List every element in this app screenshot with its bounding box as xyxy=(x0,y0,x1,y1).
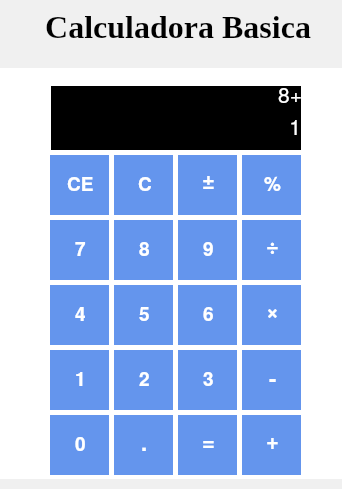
staticText: 5 xyxy=(139,300,150,327)
staticText: 1 xyxy=(75,365,86,392)
button[interactable]: Plus xyxy=(242,415,301,475)
button[interactable]: Five xyxy=(114,285,173,345)
button[interactable]: Zero xyxy=(50,415,109,475)
button[interactable]: Two xyxy=(114,350,173,410)
button[interactable]: Divide xyxy=(242,220,301,280)
staticText: % xyxy=(264,170,281,197)
staticText: = xyxy=(202,425,215,457)
staticText: CE xyxy=(67,170,94,197)
staticText: - xyxy=(269,362,277,394)
staticText: 2 xyxy=(139,365,150,392)
button[interactable]: Clear xyxy=(114,155,173,215)
button[interactable]: Three xyxy=(178,350,237,410)
button[interactable]: Four xyxy=(50,285,109,345)
staticText: 7 xyxy=(75,235,86,262)
staticText: 3 xyxy=(203,365,214,392)
button[interactable]: Clear entry xyxy=(50,155,109,215)
staticText: Calculadora Basica xyxy=(45,9,311,44)
staticText: 8 xyxy=(139,235,150,262)
button[interactable]: One xyxy=(50,350,109,410)
button[interactable]: Plus minus xyxy=(178,155,237,215)
button[interactable]: Percent xyxy=(242,155,301,215)
staticText: ± xyxy=(202,164,215,196)
staticText: 1 xyxy=(52,111,301,141)
staticText: × xyxy=(266,294,279,326)
button[interactable]: Seven xyxy=(50,220,109,280)
staticText: 4 xyxy=(75,300,86,327)
button[interactable]: Equals xyxy=(178,415,237,475)
staticText: + xyxy=(266,424,279,456)
button[interactable]: Nine xyxy=(178,220,237,280)
staticText: 8+ xyxy=(53,79,302,109)
staticText: ÷ xyxy=(266,229,279,261)
button[interactable]: Multiply xyxy=(242,285,301,345)
staticText: 9 xyxy=(203,235,214,262)
button[interactable]: Eight xyxy=(114,220,173,280)
button[interactable]: Minus xyxy=(242,350,301,410)
other: Display xyxy=(51,86,301,150)
button[interactable]: Decimal point xyxy=(114,415,173,475)
staticText: 6 xyxy=(203,300,214,327)
staticText: C xyxy=(138,170,152,197)
staticText: . xyxy=(141,426,148,458)
staticText: 0 xyxy=(75,430,86,457)
button[interactable]: Six xyxy=(178,285,237,345)
